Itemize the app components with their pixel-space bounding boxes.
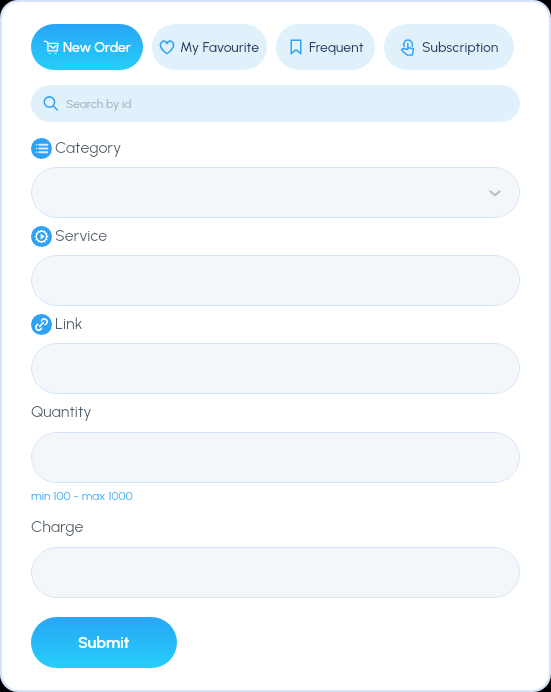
button[interactable]: New order xyxy=(31,24,143,70)
other: Link xyxy=(31,314,52,335)
button[interactable]: Subscription xyxy=(384,24,514,70)
other: Search xyxy=(43,96,59,112)
other: Frequent xyxy=(288,39,304,55)
other: New order xyxy=(44,40,58,54)
button[interactable]: Frequent xyxy=(276,24,375,70)
button[interactable]: My favourite xyxy=(152,24,267,70)
staticText: Charge xyxy=(31,517,84,536)
staticText: Search by id xyxy=(66,97,132,111)
staticText: Quantity xyxy=(31,402,92,421)
staticText: Submit xyxy=(78,633,130,652)
button[interactable] xyxy=(31,255,520,306)
staticText: Subscription xyxy=(422,39,499,56)
button[interactable] xyxy=(31,343,520,394)
staticText: min 100 - max 1000 xyxy=(31,489,133,503)
staticText: Service xyxy=(55,226,108,245)
other: My favourite xyxy=(159,39,175,55)
other: Service xyxy=(31,226,52,247)
staticText: Frequent xyxy=(309,39,364,56)
button[interactable] xyxy=(31,432,520,483)
staticText: My Favourite xyxy=(180,39,260,56)
button[interactable] xyxy=(31,167,520,218)
button[interactable] xyxy=(31,547,520,598)
button[interactable]: Search xyxy=(31,85,520,122)
other: Category xyxy=(31,138,52,159)
staticText: Category xyxy=(55,138,122,157)
button[interactable]: Submit xyxy=(31,617,177,668)
other: Subscription xyxy=(400,39,417,56)
staticText: Link xyxy=(55,314,83,333)
staticText: New Order xyxy=(63,39,131,56)
